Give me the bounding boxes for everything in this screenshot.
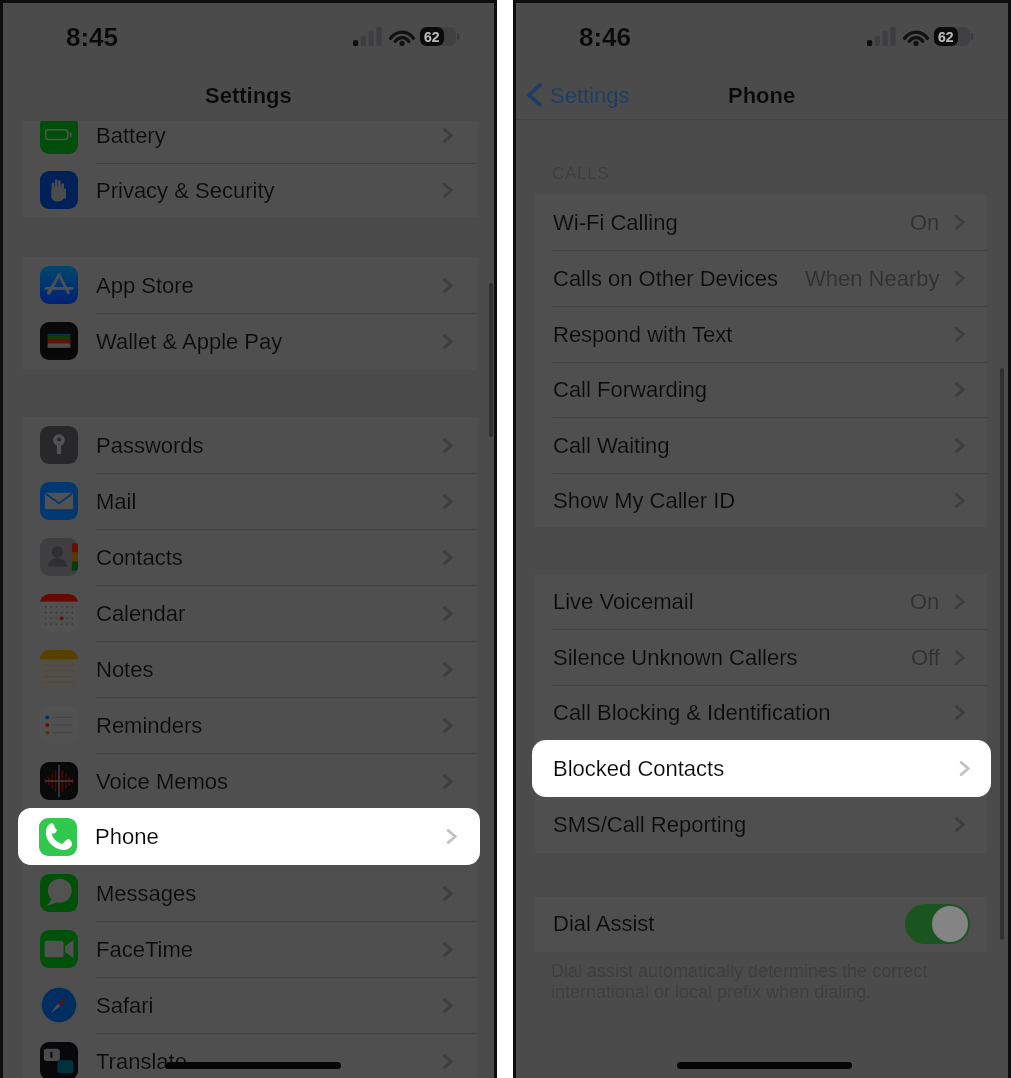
button[interactable]: Calendar <box>23 585 477 641</box>
staticText: Notes <box>96 657 154 682</box>
button[interactable]: Notes <box>23 641 477 697</box>
staticText: 8:45 <box>66 22 119 51</box>
staticText: Calendar <box>96 601 186 626</box>
staticText: 62 <box>424 29 440 45</box>
button[interactable]: Passwords <box>23 417 477 473</box>
staticText: 8:46 <box>579 22 632 51</box>
staticText: Dial Assist <box>553 911 655 936</box>
button[interactable]: Live Voicemail <box>535 574 987 629</box>
button[interactable]: Call Blocking & Identification <box>535 684 987 740</box>
button[interactable]: Call Forwarding <box>535 361 987 417</box>
staticText: Wi-Fi Calling <box>553 210 678 235</box>
button[interactable]: Safari <box>23 977 477 1033</box>
staticText: Wallet & Apple Pay <box>96 329 283 354</box>
button[interactable]: Blocked Contacts <box>532 740 991 797</box>
staticText: SMS/Call Reporting <box>553 812 747 837</box>
button[interactable]: Privacy & Security <box>23 162 477 217</box>
staticText: Reminders <box>96 713 203 738</box>
staticText: Translate <box>96 1049 187 1074</box>
button[interactable]: Silence Unknown Callers <box>535 629 987 685</box>
button[interactable]: App Store <box>23 257 477 313</box>
other: Back <box>522 82 548 108</box>
button[interactable]: Messages <box>23 865 477 921</box>
staticText: Passwords <box>96 433 204 458</box>
staticText: Messages <box>96 881 197 906</box>
staticText: Live Voicemail <box>553 589 694 614</box>
staticText: Show My Caller ID <box>553 488 736 513</box>
staticText: Mail <box>96 489 137 514</box>
staticText: Privacy & Security <box>96 178 275 203</box>
staticText: Call Blocking & Identification <box>553 700 831 725</box>
button[interactable]: Voice Memos <box>23 753 477 809</box>
button[interactable]: Phone <box>18 808 480 865</box>
staticText: 62 <box>938 29 954 45</box>
button[interactable]: Wi-Fi Calling <box>535 194 987 250</box>
button[interactable]: Back <box>522 76 630 114</box>
staticText: Call Forwarding <box>553 377 708 402</box>
button[interactable]: Contacts <box>23 529 477 585</box>
button[interactable]: Battery <box>23 121 477 163</box>
staticText: Phone <box>95 824 159 849</box>
staticText: Blocked Contacts <box>553 756 725 781</box>
button[interactable]: SMS/Call Reporting <box>535 796 987 852</box>
staticText: Voice Memos <box>96 769 229 794</box>
staticText: Dial assist automatically determines the… <box>551 961 928 981</box>
staticText: Calls on Other Devices <box>553 266 778 291</box>
staticText: Safari <box>96 993 154 1018</box>
button[interactable]: Respond with Text <box>535 306 987 362</box>
button[interactable]: Call Waiting <box>535 417 987 473</box>
staticText: App Store <box>96 273 194 298</box>
button[interactable]: Calls on Other Devices <box>535 250 987 306</box>
staticText: CALLS <box>552 164 610 183</box>
staticText: Settings <box>205 83 292 108</box>
staticText: international or local prefix when diali… <box>551 982 872 1002</box>
staticText: Call Waiting <box>553 433 670 458</box>
staticText: Off <box>911 645 940 670</box>
button[interactable]: Mail <box>23 473 477 529</box>
staticText: Contacts <box>96 545 183 570</box>
staticText: Phone <box>728 83 796 108</box>
button[interactable]: Show My Caller ID <box>535 472 987 527</box>
button[interactable]: FaceTime <box>23 921 477 977</box>
staticText: On <box>910 210 940 235</box>
staticText: When Nearby <box>805 266 940 291</box>
button[interactable]: Wallet & Apple Pay <box>23 313 477 369</box>
staticText: Silence Unknown Callers <box>553 645 798 670</box>
button[interactable]: Dial Assist <box>905 904 970 944</box>
button[interactable]: Dial Assist <box>535 897 987 951</box>
staticText: Settings <box>550 83 630 108</box>
staticText: Battery <box>96 123 166 148</box>
staticText: On <box>910 589 940 614</box>
staticText: Respond with Text <box>553 322 733 347</box>
button[interactable]: Translate <box>23 1033 477 1078</box>
button[interactable]: Reminders <box>23 697 477 753</box>
staticText: FaceTime <box>96 937 193 962</box>
